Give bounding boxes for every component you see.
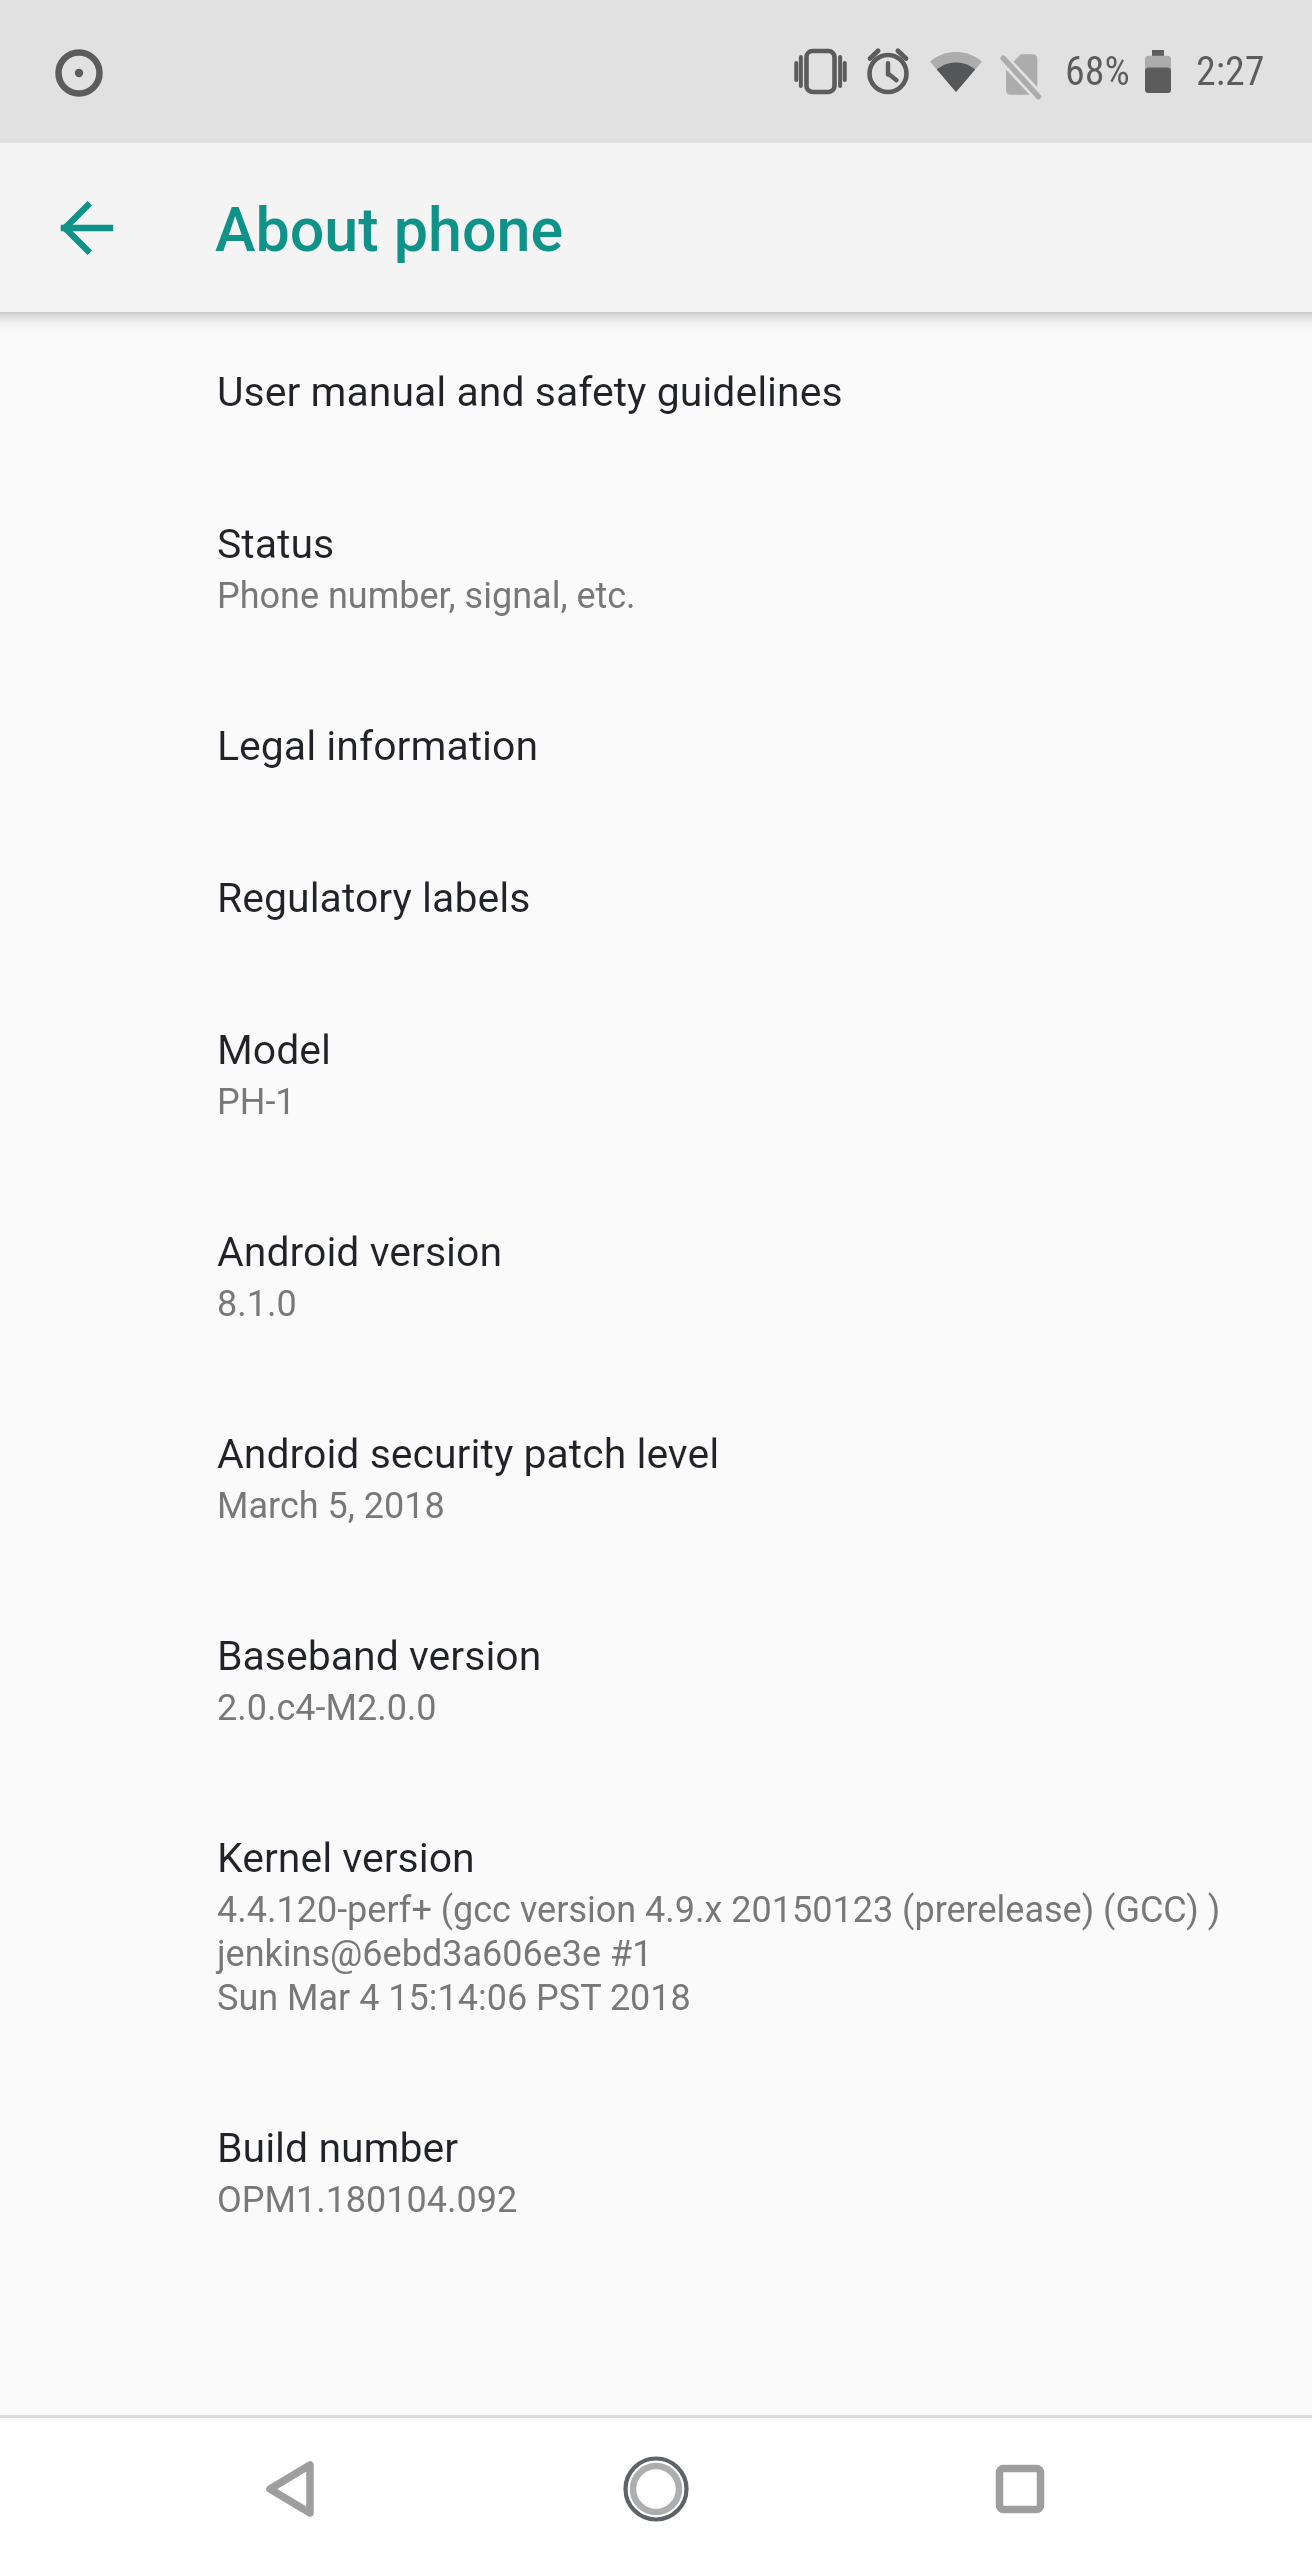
button[interactable]: Kernel version <box>0 1729 1312 2019</box>
staticText: Android security patch level <box>217 1430 720 1478</box>
button[interactable]: Android version <box>0 1123 1312 1325</box>
staticText: Model <box>217 1026 332 1074</box>
staticText: Phone number, signal, etc. <box>217 573 636 617</box>
button[interactable]: Model <box>0 922 1312 1123</box>
staticText: Baseband version <box>217 1632 542 1680</box>
button[interactable]: Navigate up <box>39 180 135 276</box>
staticText: Status <box>217 520 335 568</box>
staticText: 2:27 <box>1196 48 1265 95</box>
staticText: 2.0.c4-M2.0.0 <box>217 1685 437 1729</box>
button[interactable]: Back <box>218 2418 362 2560</box>
staticText: User manual and safety guidelines <box>217 368 843 416</box>
button[interactable]: Android security patch level <box>0 1325 1312 1527</box>
staticText: Regulatory labels <box>217 874 531 922</box>
button[interactable]: Regulatory labels <box>0 770 1312 922</box>
button[interactable]: User manual and safety guidelines <box>0 312 1312 416</box>
staticText: About phone <box>215 194 564 265</box>
button[interactable]: Baseband version <box>0 1527 1312 1729</box>
button[interactable]: Build number <box>0 2019 1312 2221</box>
button[interactable]: Home <box>584 2418 728 2560</box>
staticText: PH-1 <box>217 1079 296 1123</box>
staticText: Sun Mar 4 15:14:06 PST 2018 <box>217 1975 691 2019</box>
button[interactable]: Status <box>0 416 1312 617</box>
staticText: Android version <box>217 1228 503 1276</box>
button[interactable]: Recent apps <box>948 2418 1092 2560</box>
staticText: March 5, 2018 <box>217 1483 445 1527</box>
button[interactable]: Legal information <box>0 617 1312 770</box>
staticText: Kernel version <box>217 1834 475 1882</box>
staticText: OPM1.180104.092 <box>217 2177 518 2221</box>
staticText: jenkins@6ebd3a606e3e #1 <box>217 1931 653 1975</box>
staticText: 4.4.120-perf+ (gcc version 4.9.x 2015012… <box>217 1887 1221 1931</box>
staticText: Build number <box>217 2124 459 2172</box>
staticText: 68% <box>1065 48 1130 95</box>
staticText: Legal information <box>217 722 539 770</box>
staticText: 8.1.0 <box>217 1281 297 1325</box>
